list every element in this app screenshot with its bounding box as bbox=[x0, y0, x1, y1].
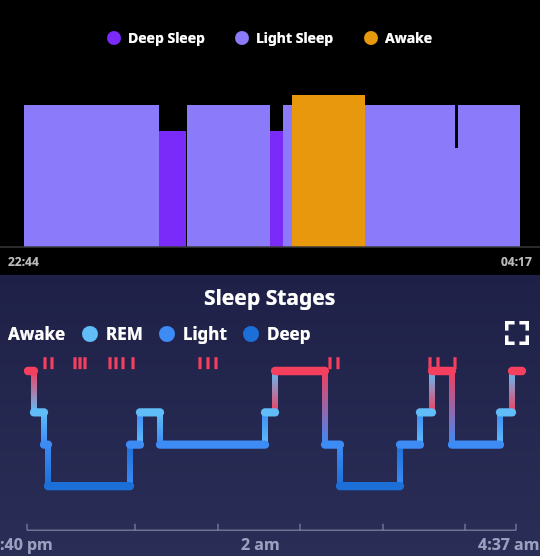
staticText: 2 am bbox=[241, 533, 280, 555]
button[interactable]: REM bbox=[82, 322, 143, 345]
button[interactable] bbox=[0, 348, 540, 556]
staticText: Deep bbox=[267, 322, 311, 345]
staticText: :40 pm bbox=[0, 533, 53, 555]
button[interactable]: Light bbox=[159, 322, 227, 345]
staticText: 04:17 bbox=[501, 253, 532, 269]
button[interactable] bbox=[0, 74, 540, 275]
staticText: 22:44 bbox=[8, 253, 39, 269]
button[interactable]: Sleep Stages bbox=[204, 283, 336, 312]
button[interactable]: Fullscreen bbox=[502, 318, 532, 348]
button[interactable]: Awake bbox=[362, 28, 435, 47]
staticText: Deep Sleep bbox=[128, 28, 205, 47]
staticText: 4:37 am bbox=[478, 533, 540, 555]
staticText: Light bbox=[183, 322, 227, 345]
staticText: Light Sleep bbox=[256, 28, 334, 47]
staticText: Awake bbox=[385, 28, 433, 47]
staticText: REM bbox=[106, 322, 143, 345]
staticText: Awake bbox=[8, 322, 66, 345]
button[interactable]: Deep Sleep bbox=[105, 28, 207, 47]
button[interactable]: Light Sleep bbox=[233, 28, 336, 47]
button[interactable]: Deep bbox=[243, 322, 311, 345]
